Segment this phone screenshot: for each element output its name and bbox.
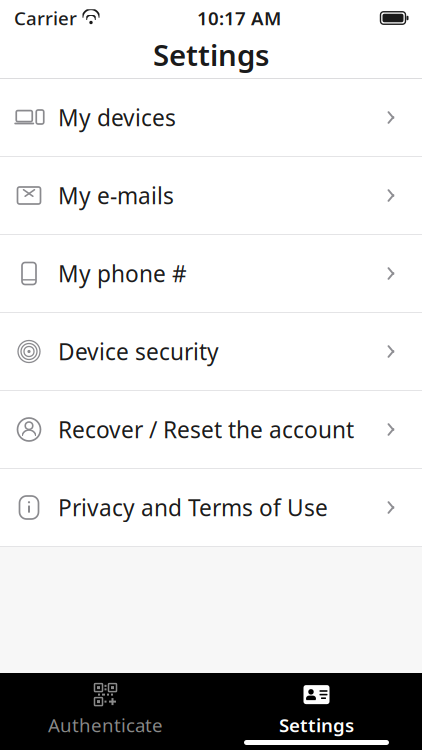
staticText: My phone # bbox=[58, 258, 187, 288]
staticText: Carrier bbox=[14, 6, 77, 30]
staticText: 10:17 AM bbox=[197, 6, 281, 30]
staticText: Settings bbox=[153, 35, 269, 74]
staticText: My devices bbox=[58, 102, 176, 132]
staticText: Settings bbox=[279, 713, 354, 737]
button[interactable]: Recover / Reset the account bbox=[0, 391, 422, 469]
button[interactable]: Settings bbox=[211, 671, 422, 748]
button[interactable]: My phone # bbox=[0, 235, 422, 313]
staticText: My e-mails bbox=[58, 180, 174, 210]
button[interactable]: Device security bbox=[0, 313, 422, 391]
button[interactable]: Authenticate bbox=[0, 671, 211, 748]
staticText: Privacy and Terms of Use bbox=[58, 492, 328, 522]
button[interactable]: My devices bbox=[0, 79, 422, 157]
staticText: Authenticate bbox=[48, 713, 163, 737]
staticText: Recover / Reset the account bbox=[58, 414, 354, 444]
button[interactable]: Privacy and Terms of Use bbox=[0, 469, 422, 546]
button[interactable]: My e-mails bbox=[0, 157, 422, 235]
staticText: Device security bbox=[58, 336, 219, 366]
